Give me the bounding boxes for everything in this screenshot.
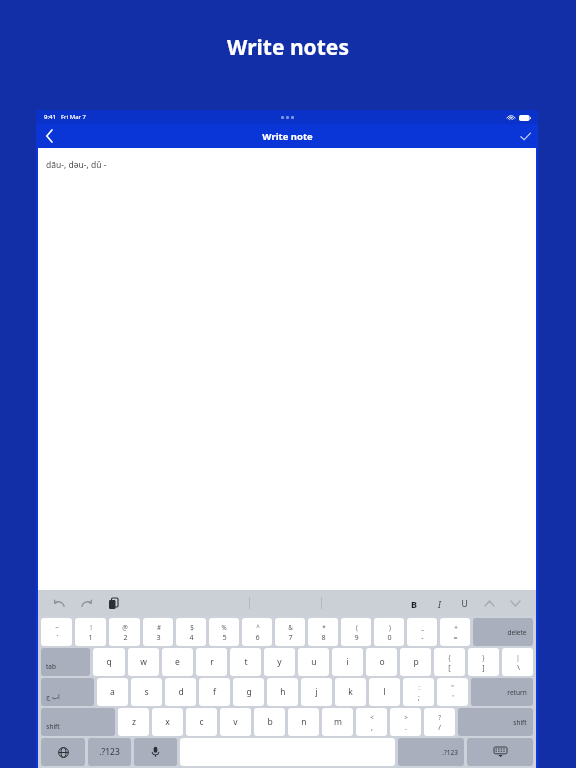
button[interactable]: %: [209, 618, 239, 646]
staticText: -: [421, 632, 424, 642]
button[interactable]: g: [233, 678, 264, 706]
button[interactable]: Back: [36, 124, 62, 148]
button[interactable]: x: [152, 708, 183, 736]
button[interactable]: _: [407, 618, 437, 646]
button[interactable]: v: [220, 708, 251, 736]
button[interactable]: Redo: [79, 596, 93, 610]
staticText: ": [451, 683, 454, 691]
button[interactable]: ): [374, 618, 404, 646]
button[interactable]: o: [366, 648, 397, 676]
button[interactable]: &: [275, 618, 305, 646]
staticText: |: [516, 653, 520, 661]
button[interactable]: shift: [41, 708, 115, 736]
button[interactable]: z: [118, 708, 149, 736]
button[interactable]: (: [341, 618, 371, 646]
button[interactable]: .?123: [398, 738, 464, 766]
button[interactable]: p: [400, 648, 431, 676]
button[interactable]: h: [267, 678, 298, 706]
button[interactable]: d: [165, 678, 196, 706]
button[interactable]: <: [356, 708, 387, 736]
staticText: .?123: [99, 746, 120, 758]
button[interactable]: tab: [41, 648, 90, 676]
button[interactable]: ~: [41, 618, 72, 646]
button[interactable]: r: [196, 648, 227, 676]
staticText: 9:41: [44, 113, 56, 121]
button[interactable]: ^: [242, 618, 272, 646]
button[interactable]: ": [437, 678, 468, 706]
staticText: d: [178, 686, 184, 698]
button[interactable]: Dictate: [134, 738, 177, 766]
staticText: B: [411, 598, 417, 610]
button[interactable]: m: [322, 708, 353, 736]
button[interactable]: f: [199, 678, 230, 706]
staticText: g: [246, 686, 252, 698]
button[interactable]: t: [230, 648, 261, 676]
button[interactable]: @: [109, 618, 140, 646]
button[interactable]: >: [390, 708, 421, 736]
button[interactable]: #: [143, 618, 173, 646]
button[interactable]: }: [468, 648, 499, 676]
staticText: +: [454, 623, 458, 631]
button[interactable]: !: [75, 618, 106, 646]
button[interactable]: Next: [509, 597, 522, 610]
staticText: r: [210, 656, 214, 668]
button[interactable]: .?123: [88, 738, 131, 766]
staticText: 5: [222, 632, 227, 642]
button[interactable]: $: [176, 618, 206, 646]
button[interactable]: c: [186, 708, 217, 736]
staticText: U: [461, 598, 468, 610]
button[interactable]: Paste: [106, 596, 120, 610]
staticText: c: [199, 716, 204, 728]
staticText: o: [379, 656, 385, 668]
button[interactable]: return: [471, 678, 533, 706]
button[interactable]: i: [332, 648, 363, 676]
staticText: ?: [438, 713, 441, 721]
button[interactable]: |: [502, 648, 533, 676]
button[interactable]: I: [433, 598, 445, 610]
button[interactable]: shift: [458, 708, 533, 736]
staticText: _: [421, 623, 424, 631]
staticText: =: [453, 632, 458, 642]
staticText: 7: [288, 632, 293, 642]
button[interactable]: k: [335, 678, 366, 706]
staticText: y: [277, 656, 282, 668]
button[interactable]: w: [128, 648, 159, 676]
button[interactable]: delete: [473, 618, 533, 646]
button[interactable]: l: [369, 678, 400, 706]
button[interactable]: q: [93, 648, 125, 676]
button[interactable]: *: [308, 618, 338, 646]
button[interactable]: Switch keyboard: [41, 738, 85, 766]
staticText: *: [322, 623, 326, 631]
button[interactable]: b: [254, 708, 285, 736]
staticText: s: [144, 686, 149, 698]
button[interactable]: Hide keyboard: [467, 738, 533, 766]
staticText: @: [122, 623, 128, 631]
button[interactable]: :: [403, 678, 434, 706]
staticText: $: [190, 623, 194, 631]
button[interactable]: e: [162, 648, 193, 676]
staticText: Write notes: [0, 33, 576, 62]
staticText: p: [413, 656, 419, 668]
button[interactable]: Save note: [512, 124, 538, 148]
button[interactable]: اب ج: [41, 678, 94, 706]
staticText: 2: [123, 632, 128, 642]
button[interactable]: +: [440, 618, 470, 646]
staticText: I: [438, 598, 441, 610]
button[interactable]: Previous: [483, 597, 496, 610]
button[interactable]: a: [97, 678, 128, 706]
staticText: t: [244, 656, 248, 668]
button[interactable]: y: [264, 648, 295, 676]
staticText: 3: [156, 632, 161, 642]
button[interactable]: Underline: [458, 598, 470, 610]
button[interactable]: j: [301, 678, 332, 706]
button[interactable]: Undo: [52, 596, 66, 610]
button[interactable]: u: [298, 648, 329, 676]
button[interactable]: n: [288, 708, 319, 736]
button[interactable]: s: [131, 678, 162, 706]
button[interactable]: ?: [424, 708, 455, 736]
button[interactable]: B: [408, 598, 420, 610]
button[interactable]: {: [434, 648, 465, 676]
staticText: i: [346, 656, 349, 668]
